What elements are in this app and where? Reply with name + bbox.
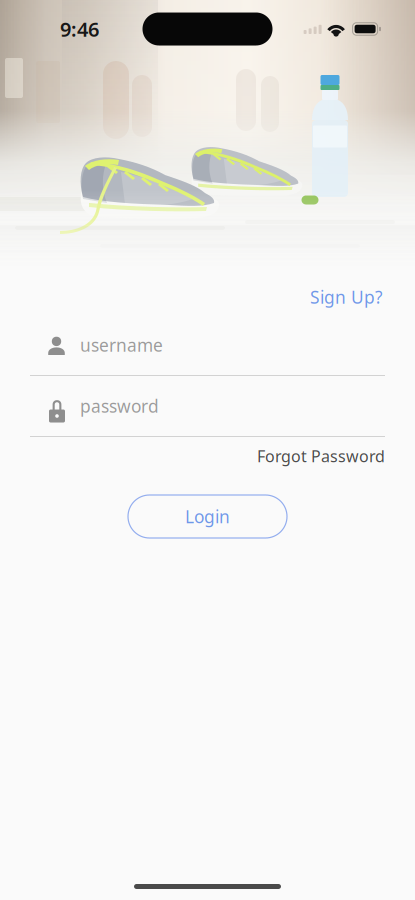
staticText: password xyxy=(80,394,159,417)
staticText: Sign Up? xyxy=(310,285,383,308)
button[interactable]: Sign Up? xyxy=(283,282,383,312)
staticText: 9:46 xyxy=(60,16,99,42)
staticText: username xyxy=(80,333,163,356)
button[interactable]: Login xyxy=(128,495,287,538)
staticText: Login xyxy=(185,505,230,528)
button[interactable]: Forgot Password xyxy=(225,442,385,470)
staticText: Forgot Password xyxy=(257,445,385,467)
